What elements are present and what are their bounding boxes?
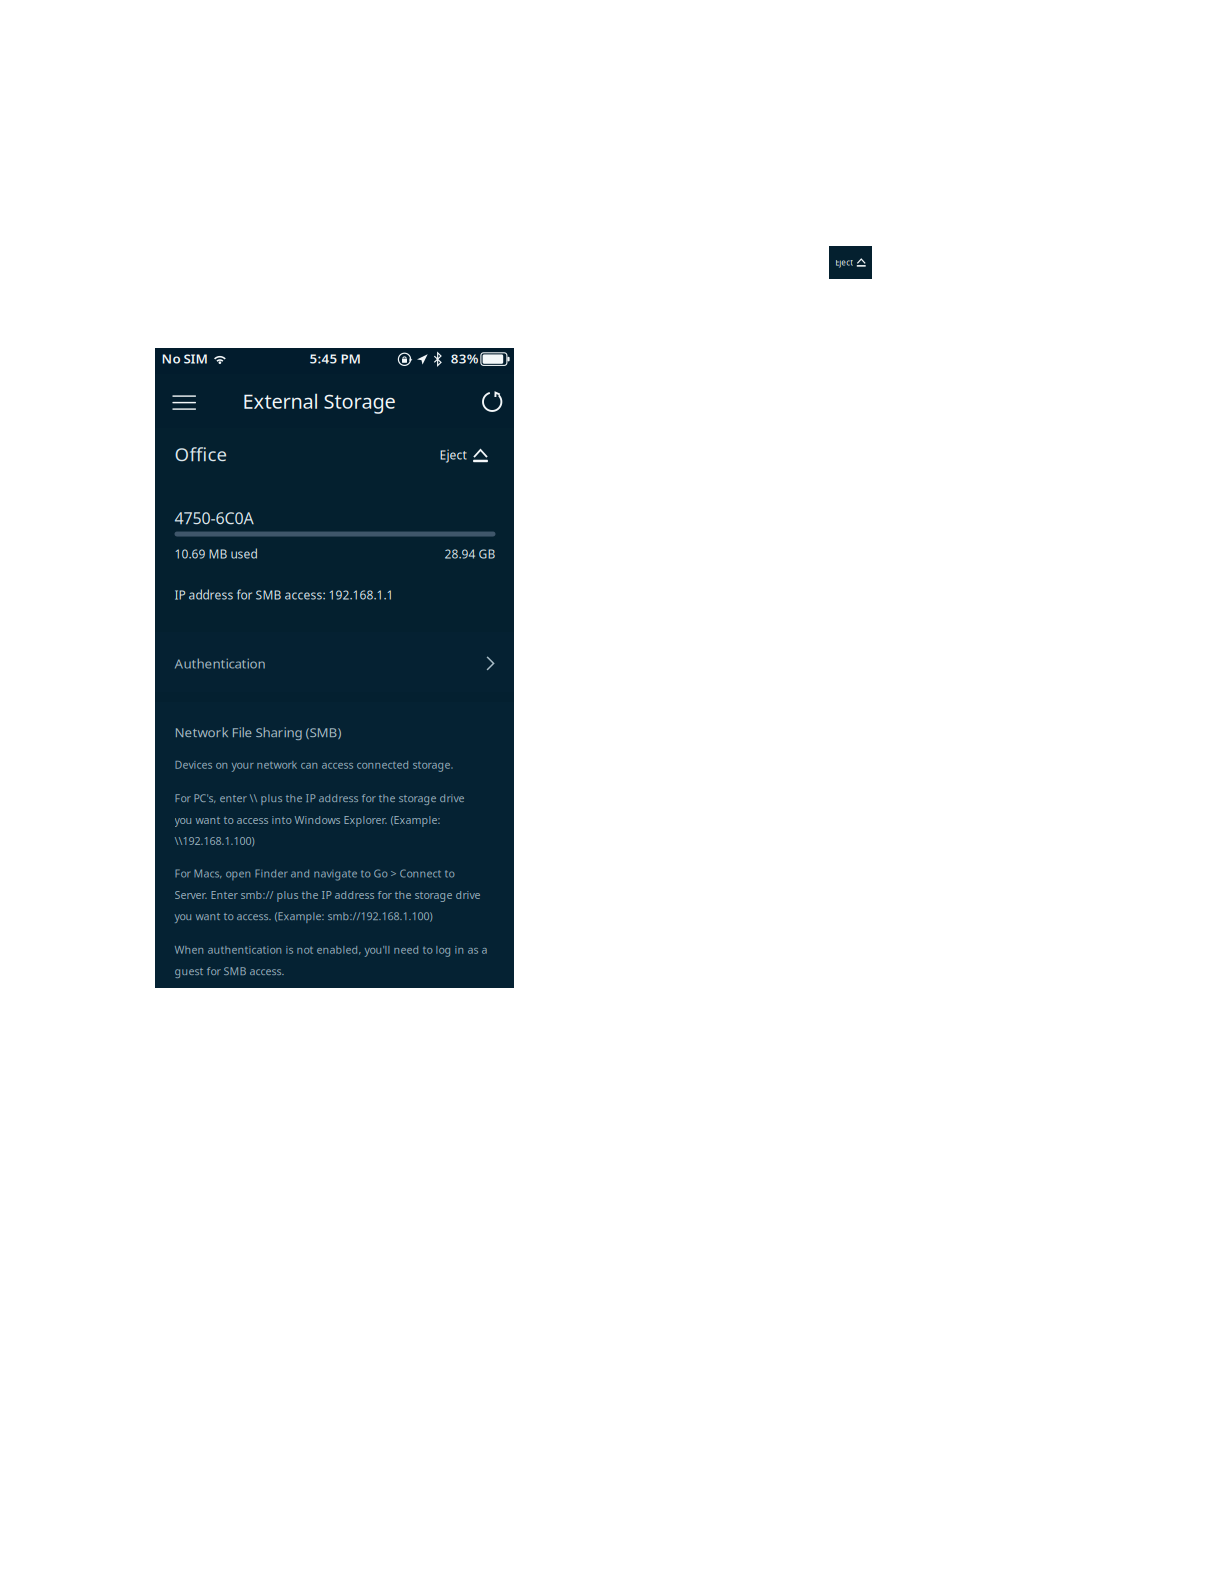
staticText: Network File Sharing (SMB) bbox=[174, 723, 341, 741]
staticText: Eject bbox=[835, 257, 853, 268]
staticText: 28.94 GB bbox=[444, 546, 495, 562]
staticText: you want to access into Windows Explorer… bbox=[174, 813, 440, 827]
staticText: External Storage bbox=[242, 388, 395, 414]
staticText: you want to access. (Example: smb://192.… bbox=[174, 909, 432, 923]
staticText: Eject bbox=[439, 447, 466, 463]
staticText: For Macs, open Finder and navigate to Go… bbox=[174, 866, 454, 881]
staticText: Office bbox=[174, 442, 227, 466]
staticText: \\192.168.1.100) bbox=[174, 834, 254, 848]
button[interactable]: Menu bbox=[161, 381, 207, 425]
staticText: No SIM bbox=[161, 349, 207, 367]
staticText: Authentication bbox=[174, 654, 265, 672]
button[interactable]: Authentication bbox=[155, 640, 514, 686]
staticText: When authentication is not enabled, you'… bbox=[174, 943, 487, 957]
staticText: 10.69 MB used bbox=[174, 546, 257, 562]
staticText: For PC's, enter \\ plus the IP address f… bbox=[174, 791, 464, 805]
staticText: guest for SMB access. bbox=[174, 964, 284, 978]
staticText: 83% bbox=[451, 349, 479, 367]
button[interactable]: Refresh bbox=[470, 379, 514, 423]
staticText: 4750-6C0A bbox=[174, 507, 253, 528]
button[interactable]: Eject bbox=[829, 246, 872, 279]
staticText: Server. Enter smb:// plus the IP address… bbox=[174, 888, 480, 902]
staticText: IP address for SMB access: 192.168.1.1 bbox=[174, 587, 393, 603]
staticText: Devices on your network can access conne… bbox=[174, 757, 453, 772]
button[interactable]: Eject bbox=[434, 440, 484, 470]
staticText: 5:45 PM bbox=[309, 349, 360, 367]
